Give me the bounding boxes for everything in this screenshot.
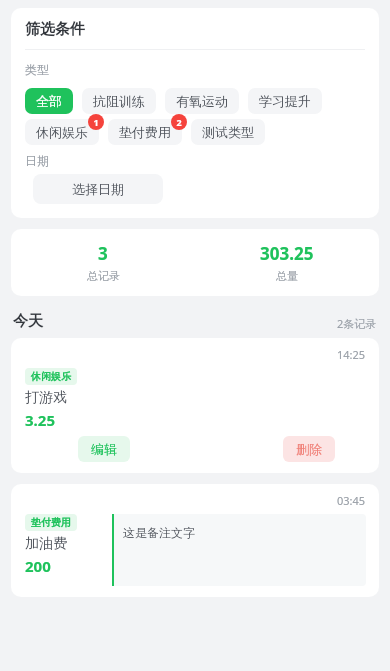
staticText: 今天 <box>13 312 43 331</box>
staticText: 总量 <box>276 269 298 283</box>
button[interactable]: 303.25 <box>195 242 379 283</box>
staticText: 类型 <box>25 62 49 77</box>
staticText: 303.25 <box>260 242 314 265</box>
staticText: 03:45 <box>337 493 366 508</box>
staticText: 全部 <box>36 93 62 109</box>
button[interactable]: 3 <box>11 242 195 283</box>
staticText: 选择日期 <box>72 181 124 197</box>
staticText: 休闲娱乐 <box>31 370 71 383</box>
staticText: 日期 <box>25 153 49 168</box>
staticText: 有氧运动 <box>176 93 228 109</box>
button[interactable]: 03:45 <box>11 484 379 597</box>
button[interactable]: 全部 <box>25 88 73 114</box>
button[interactable]: 删除 <box>283 436 335 462</box>
staticText: 打游戏 <box>25 389 67 407</box>
staticText: 编辑 <box>91 441 117 457</box>
staticText: 2条记录 <box>337 316 377 331</box>
staticText: 垫付费用 <box>119 124 171 140</box>
button[interactable]: 14:25 <box>11 338 379 473</box>
staticText: 总记录 <box>87 269 120 283</box>
staticText: 这是备注文字 <box>123 525 195 540</box>
staticText: 3.25 <box>25 410 55 430</box>
staticText: 加油费 <box>25 535 67 553</box>
staticText: 学习提升 <box>259 93 311 109</box>
button[interactable]: 有氧运动 <box>165 88 239 114</box>
button[interactable]: 编辑 <box>78 436 130 462</box>
button[interactable]: 抗阻训练 <box>82 88 156 114</box>
staticText: 休闲娱乐 <box>36 124 88 140</box>
staticText: 抗阻训练 <box>93 93 145 109</box>
button[interactable]: 选择日期 <box>33 174 163 204</box>
staticText: 1 <box>93 116 99 128</box>
button[interactable]: 休闲娱乐 <box>25 119 99 145</box>
staticText: 测试类型 <box>202 124 254 140</box>
staticText: 200 <box>25 556 51 576</box>
button[interactable]: 学习提升 <box>248 88 322 114</box>
staticText: 3 <box>98 242 108 265</box>
staticText: 14:25 <box>337 347 366 362</box>
staticText: 2 <box>176 116 182 128</box>
staticText: 垫付费用 <box>31 516 71 529</box>
button[interactable]: 测试类型 <box>191 119 265 145</box>
button[interactable]: 垫付费用 <box>108 119 182 145</box>
staticText: 筛选条件 <box>25 20 85 39</box>
staticText: 删除 <box>296 441 322 457</box>
